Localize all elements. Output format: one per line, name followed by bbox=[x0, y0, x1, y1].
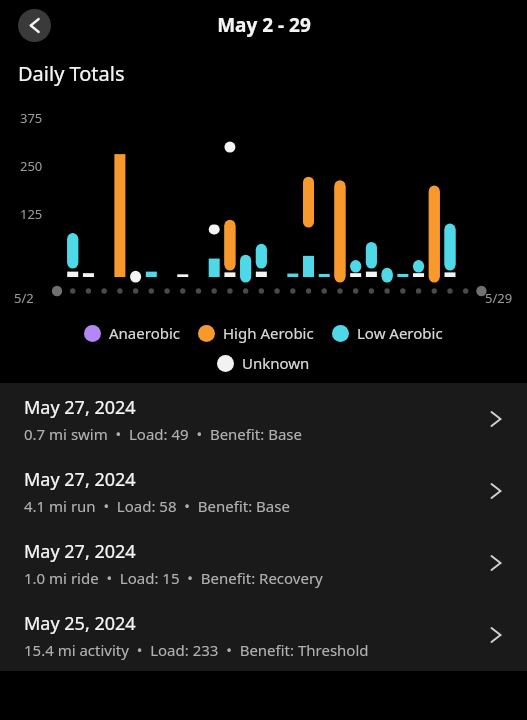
staticText: 4.1 mi run • Load: 58 • Benefit: Base bbox=[24, 496, 290, 516]
button[interactable]: May 27, 2024 bbox=[0, 455, 527, 527]
staticText: Daily Totals bbox=[18, 60, 125, 87]
staticText: 250 bbox=[20, 157, 43, 175]
button[interactable]: May 25, 2024 bbox=[0, 599, 527, 671]
staticText: May 27, 2024 bbox=[24, 395, 136, 420]
button[interactable]: May 27, 2024 bbox=[0, 383, 527, 455]
staticText: Low Aerobic bbox=[357, 323, 443, 343]
staticText: Unknown bbox=[242, 353, 310, 373]
staticText: 15.4 mi activity • Load: 233 • Benefit: … bbox=[24, 640, 369, 660]
staticText: 125 bbox=[20, 205, 43, 223]
button[interactable]: Back bbox=[18, 9, 51, 42]
staticText: 5/2 bbox=[14, 289, 34, 307]
staticText: 5/29 bbox=[485, 289, 513, 307]
staticText: May 27, 2024 bbox=[24, 539, 136, 564]
staticText: 375 bbox=[20, 109, 43, 127]
staticText: 0.7 mi swim • Load: 49 • Benefit: Base bbox=[24, 424, 302, 444]
staticText: High Aerobic bbox=[223, 323, 314, 343]
staticText: Anaerobic bbox=[109, 323, 180, 343]
staticText: May 2 - 29 bbox=[217, 12, 311, 38]
staticText: May 25, 2024 bbox=[24, 611, 136, 636]
staticText: May 27, 2024 bbox=[24, 467, 136, 492]
button[interactable]: May 27, 2024 bbox=[0, 527, 527, 599]
staticText: 1.0 mi ride • Load: 15 • Benefit: Recove… bbox=[24, 568, 323, 588]
